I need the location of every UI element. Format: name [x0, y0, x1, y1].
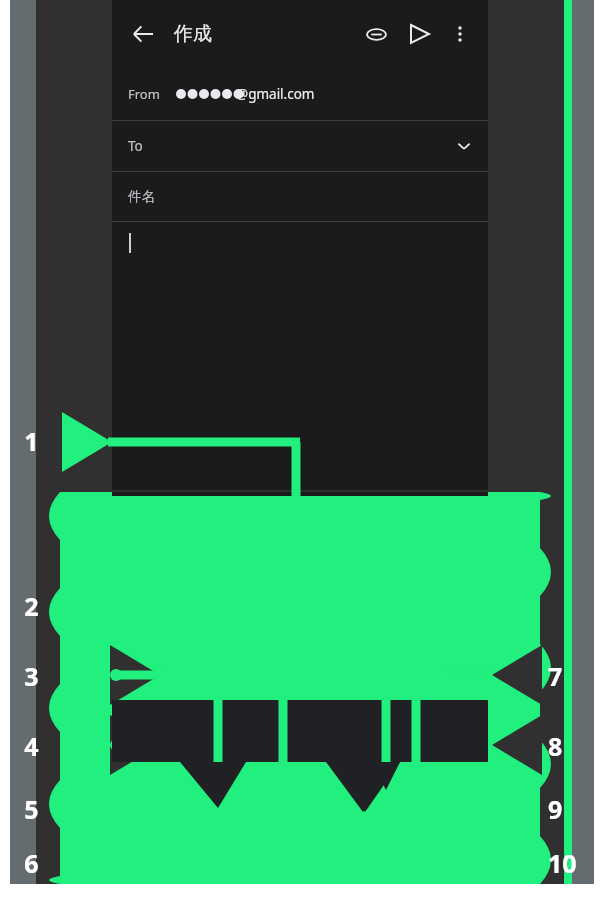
staticText: 4 [24, 729, 39, 761]
button[interactable]: Right [397, 697, 428, 743]
button[interactable]: Shift [113, 646, 166, 692]
staticText: @gmail.com [236, 85, 315, 103]
button[interactable]: Emoji [208, 697, 241, 743]
staticText: 1 [24, 424, 39, 456]
button[interactable]: From [112, 68, 488, 120]
staticText: From [128, 85, 160, 103]
staticText: 日本語 [267, 713, 303, 728]
button[interactable]: To [112, 121, 488, 171]
button[interactable]: 日本語 [243, 697, 327, 743]
button[interactable]: 、 [173, 697, 206, 743]
button[interactable]: Send [404, 18, 436, 50]
button[interactable] [112, 222, 488, 490]
staticText: 作成 [174, 22, 212, 46]
button[interactable]: 。 [329, 697, 362, 743]
button[interactable]: Attach [360, 18, 392, 50]
button[interactable]: 件名 [112, 172, 488, 221]
staticText: 3 [24, 659, 39, 691]
button[interactable]: Switch input mode [113, 697, 171, 743]
button[interactable]: More options [446, 20, 474, 48]
staticText: 5 [24, 792, 39, 824]
button[interactable]: Enter [430, 697, 487, 743]
staticText: 8 [548, 729, 563, 761]
staticText: To [128, 137, 143, 155]
staticText: 9 [548, 792, 563, 824]
button[interactable]: Hide keyboard [154, 756, 170, 772]
staticText: 件名 [128, 188, 155, 205]
button[interactable]: Back [126, 17, 160, 51]
staticText: 2 [24, 589, 39, 621]
button[interactable]: Left [364, 697, 395, 743]
